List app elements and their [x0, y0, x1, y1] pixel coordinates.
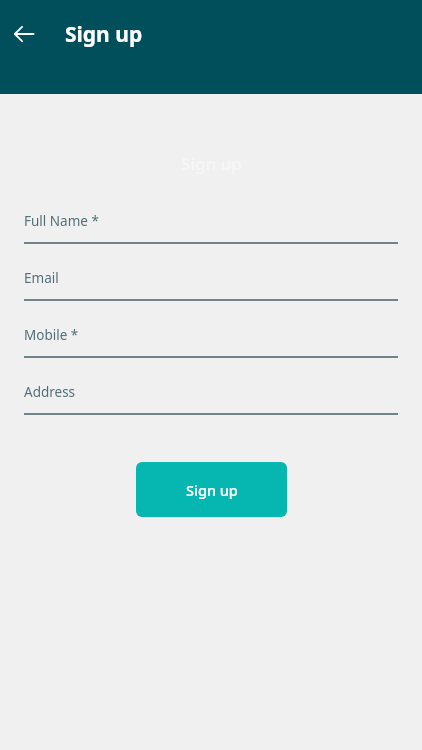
staticText: Address: [24, 383, 76, 401]
button[interactable]: Sign up: [136, 462, 287, 517]
staticText: Mobile *: [24, 326, 79, 344]
button[interactable]: Mobile *: [24, 314, 398, 356]
staticText: Sign up: [65, 20, 143, 49]
button[interactable]: Back: [6, 16, 42, 52]
button[interactable]: Full Name *: [24, 200, 398, 242]
staticText: Full Name *: [24, 212, 99, 230]
staticText: Sign up: [186, 480, 238, 500]
button[interactable]: Address: [24, 371, 398, 413]
staticText: Email: [24, 269, 59, 287]
button[interactable]: Email: [24, 257, 398, 299]
